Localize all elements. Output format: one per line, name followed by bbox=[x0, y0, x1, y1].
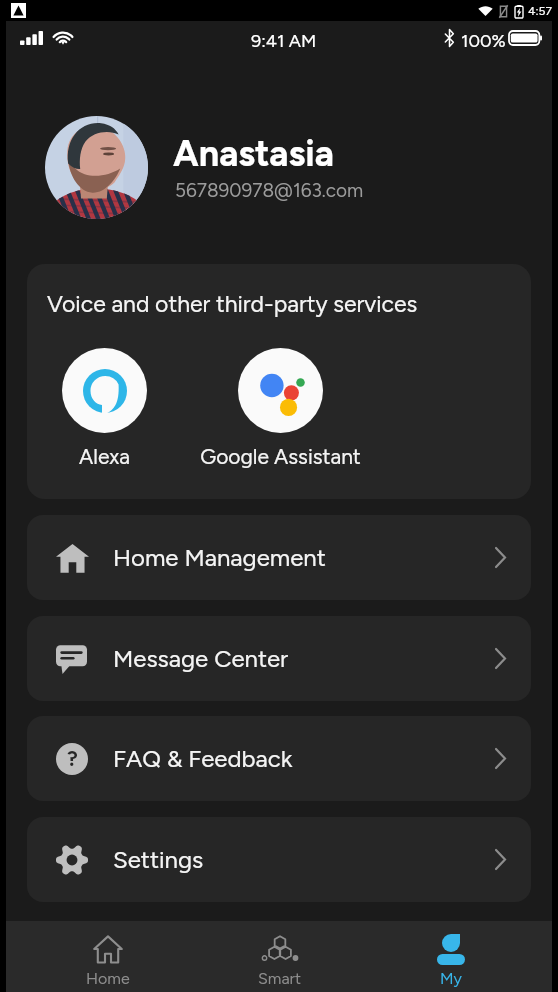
staticText: 100% bbox=[461, 30, 506, 52]
staticText: Google Assistant bbox=[200, 444, 361, 469]
staticText: Anastasia bbox=[173, 132, 334, 175]
button[interactable]: Message Center bbox=[27, 616, 531, 701]
button[interactable]: Google Assistant bbox=[185, 348, 375, 470]
button[interactable]: Alexa bbox=[27, 348, 199, 470]
button[interactable]: My bbox=[365, 921, 536, 992]
staticText: 4:57 bbox=[528, 4, 552, 18]
button[interactable]: Settings bbox=[27, 817, 531, 902]
staticText: Smart bbox=[258, 969, 302, 988]
staticText: Alexa bbox=[79, 444, 130, 469]
staticText: 567890978@163.com bbox=[175, 179, 364, 202]
staticText: Voice and other third-party services bbox=[47, 290, 418, 318]
staticText: Home bbox=[86, 969, 130, 988]
button[interactable]: Home Management bbox=[27, 515, 531, 600]
staticText: Settings bbox=[113, 845, 204, 874]
staticText: FAQ & Feedback bbox=[113, 744, 293, 773]
staticText: ? bbox=[67, 746, 78, 771]
staticText: My bbox=[440, 969, 462, 988]
button[interactable]: ? bbox=[27, 716, 531, 801]
staticText: 9:41 AM bbox=[251, 30, 317, 52]
staticText: Message Center bbox=[113, 644, 289, 673]
button[interactable]: Home bbox=[22, 921, 194, 992]
button[interactable]: Smart bbox=[194, 921, 365, 992]
staticText: Home Management bbox=[113, 543, 326, 572]
